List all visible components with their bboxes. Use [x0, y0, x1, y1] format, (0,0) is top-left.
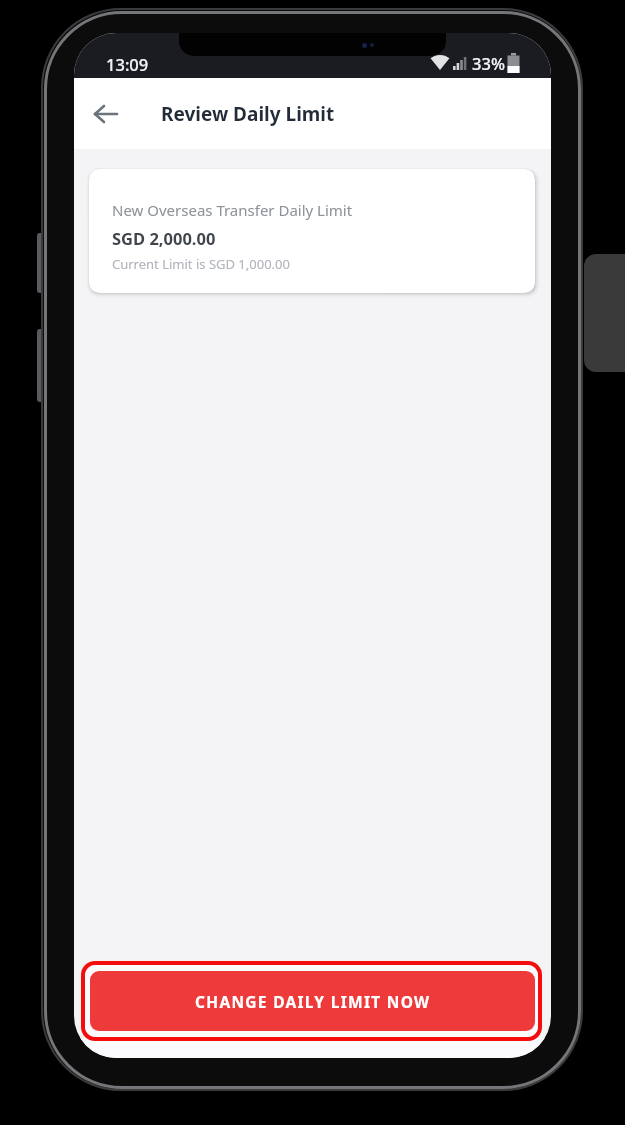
staticText: Review Daily Limit [161, 101, 335, 127]
staticText: 33% [472, 52, 505, 74]
staticText: CHANGE DAILY LIMIT NOW [195, 991, 431, 1012]
staticText: SGD 2,000.00 [112, 227, 216, 249]
button[interactable] [90, 98, 122, 130]
button[interactable]: CHANGE DAILY LIMIT NOW [90, 971, 535, 1031]
staticText: 13:09 [106, 53, 149, 75]
staticText: Current Limit is SGD 1,000.00 [112, 255, 290, 273]
button[interactable]: New Overseas Transfer Daily Limit [89, 169, 535, 293]
staticText: New Overseas Transfer Daily Limit [112, 200, 353, 220]
